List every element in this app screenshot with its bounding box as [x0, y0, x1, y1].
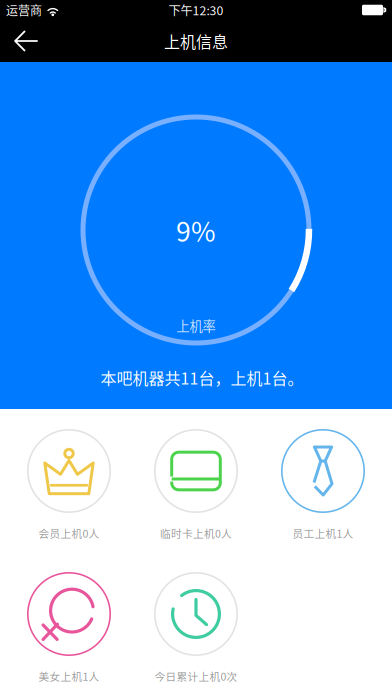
staticText: 9% — [176, 211, 216, 249]
staticText: 上机率 — [176, 316, 215, 335]
button[interactable]: 临时卡上机0人 — [132, 429, 259, 539]
button[interactable]: 美女上机1人 — [5, 572, 132, 682]
staticText: 今日累计上机0次 — [154, 668, 237, 684]
button[interactable]: 会员上机0人 — [5, 429, 132, 539]
staticText: 美女上机1人 — [38, 668, 99, 684]
button[interactable]: Back — [0, 20, 52, 62]
staticText: 员工上机1人 — [292, 525, 353, 541]
staticText: 临时卡上机0人 — [160, 525, 232, 541]
button[interactable]: 员工上机1人 — [259, 429, 386, 539]
staticText: 运营商 — [6, 1, 42, 19]
staticText: 上机信息 — [164, 29, 228, 53]
staticText: 下午12:30 — [168, 1, 223, 19]
staticText: 本吧机器共11台，上机1台。 — [100, 366, 303, 389]
staticText: 会员上机0人 — [38, 525, 99, 541]
button[interactable]: 今日累计上机0次 — [132, 572, 259, 682]
